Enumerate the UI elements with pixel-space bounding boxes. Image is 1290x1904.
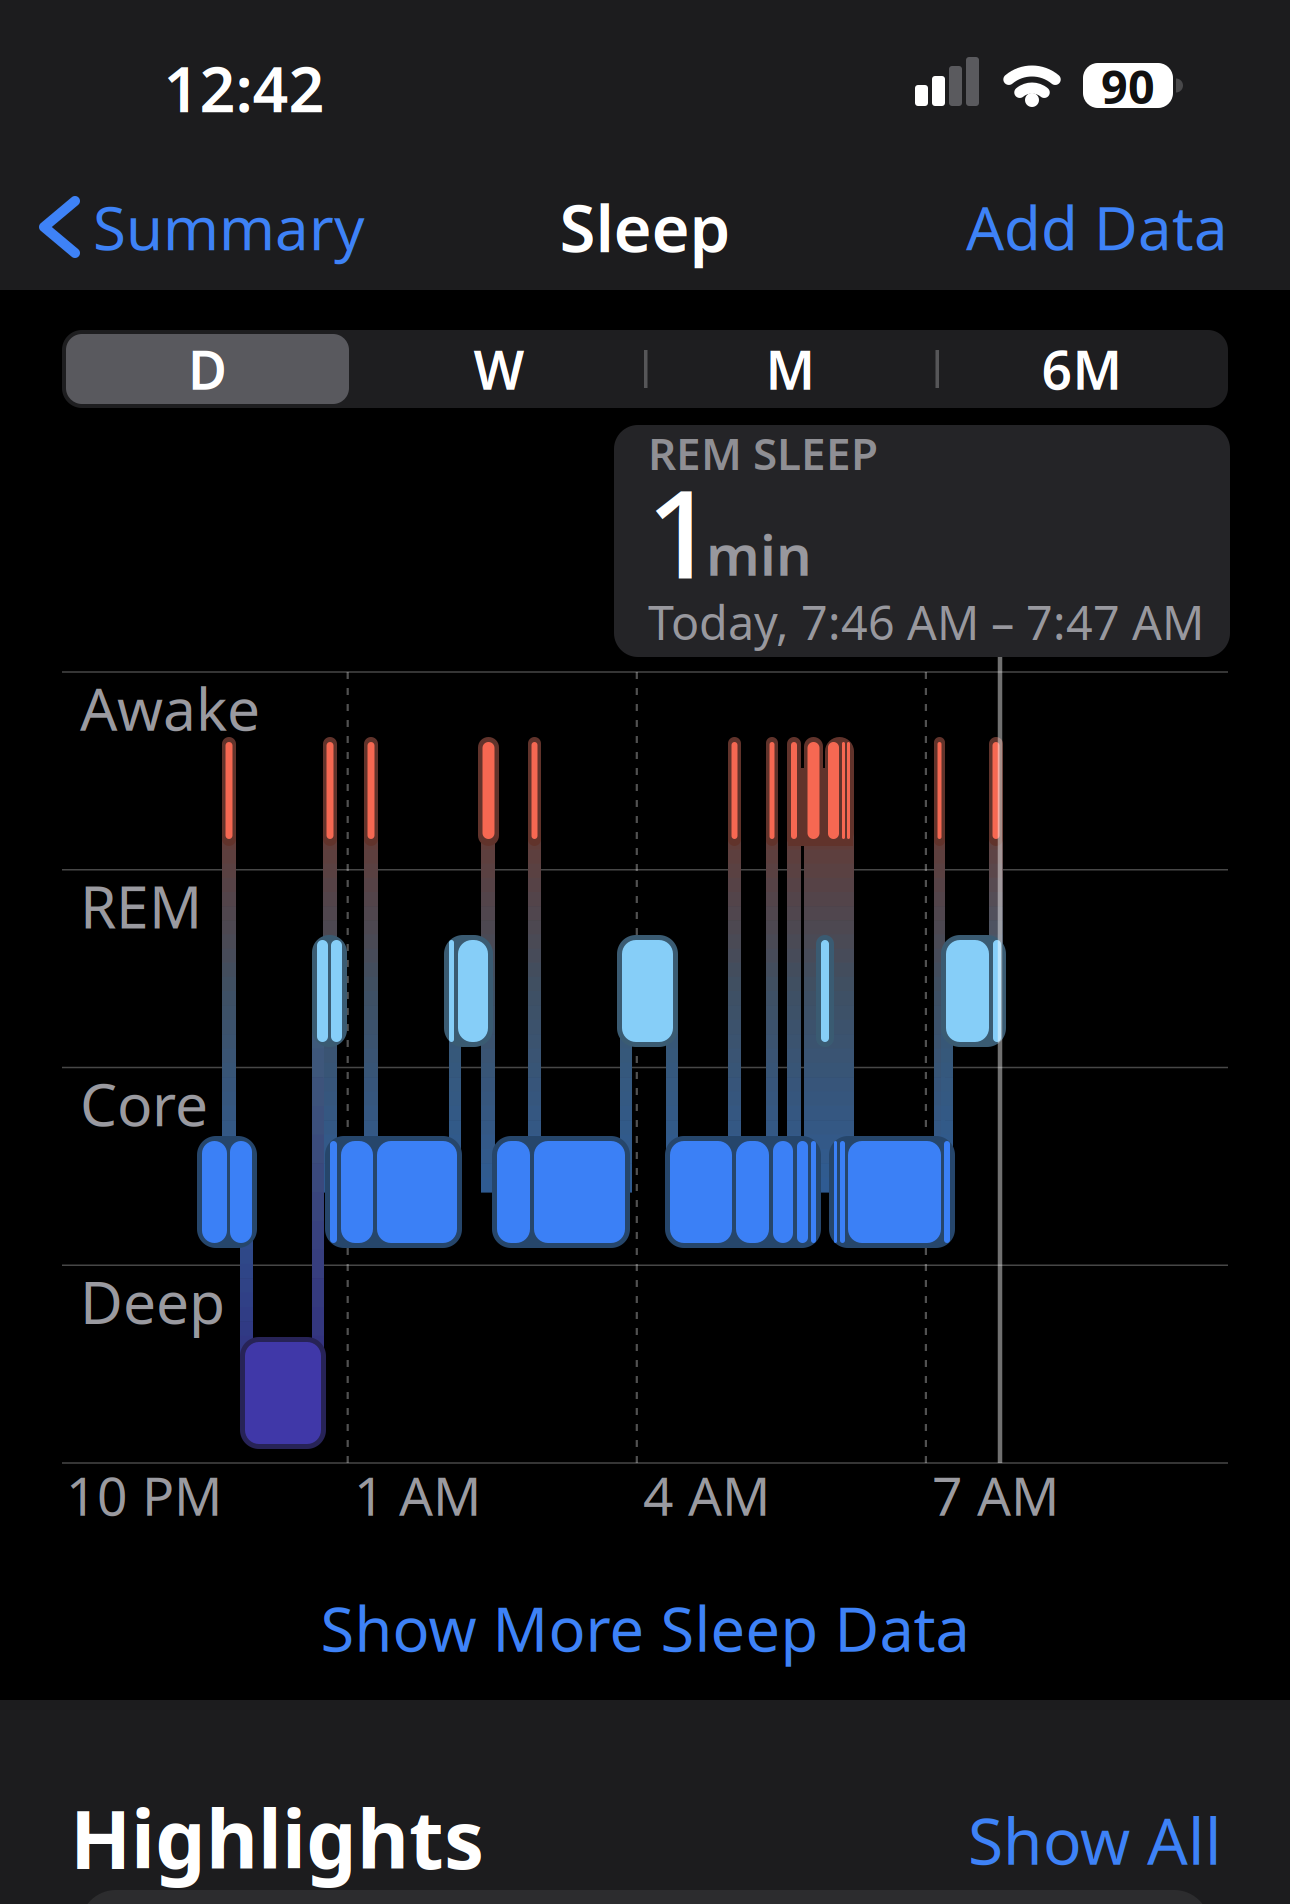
staticText: Sleep bbox=[559, 184, 730, 270]
staticText: 12:42 bbox=[163, 46, 324, 130]
button[interactable]: D bbox=[66, 334, 349, 404]
staticText: D bbox=[188, 334, 227, 404]
staticText: Summary bbox=[93, 187, 365, 267]
staticText: W bbox=[473, 334, 524, 404]
staticText: 6M bbox=[1041, 334, 1122, 404]
staticText: 90 bbox=[1101, 55, 1155, 117]
staticText: 1 bbox=[646, 450, 716, 612]
button[interactable]: W bbox=[357, 334, 640, 404]
staticText: Add Data bbox=[966, 187, 1228, 267]
button[interactable]: Back bbox=[44, 187, 365, 267]
staticText: 1 AM bbox=[354, 1460, 481, 1530]
staticText: REM SLEEP bbox=[648, 424, 878, 482]
staticText: M bbox=[765, 334, 815, 404]
button[interactable]: Add Data bbox=[966, 187, 1228, 267]
staticText: Highlights bbox=[70, 1785, 484, 1891]
staticText: 4 AM bbox=[643, 1460, 770, 1530]
staticText: Deep bbox=[80, 1262, 225, 1340]
staticText: Today, 7:46 AM – 7:47 AM bbox=[648, 591, 1204, 653]
button[interactable]: Show More Sleep Data bbox=[320, 1587, 969, 1669]
button[interactable]: M bbox=[649, 334, 932, 404]
button[interactable]: 6M bbox=[940, 334, 1223, 404]
staticText: Core bbox=[80, 1064, 208, 1142]
button[interactable]: Show All bbox=[968, 1797, 1222, 1882]
staticText: min bbox=[706, 517, 812, 591]
staticText: Show All bbox=[968, 1797, 1222, 1882]
staticText: Awake bbox=[80, 669, 260, 747]
staticText: 7 AM bbox=[932, 1460, 1059, 1530]
staticText: 10 PM bbox=[66, 1460, 222, 1530]
staticText: Show More Sleep Data bbox=[320, 1587, 969, 1669]
staticText: REM bbox=[80, 867, 202, 945]
